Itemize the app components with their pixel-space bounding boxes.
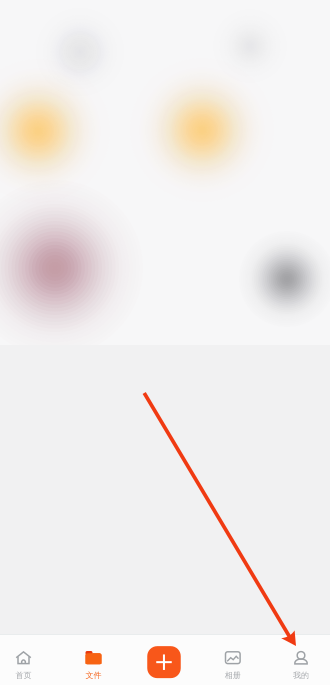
- staticText: 相册: [225, 670, 241, 680]
- button[interactable]: 我的: [268, 636, 330, 685]
- button[interactable]: 新建: [131, 637, 197, 685]
- staticText: 文件: [85, 670, 101, 680]
- button[interactable]: 相册: [200, 636, 266, 685]
- button[interactable]: 首页: [0, 636, 56, 685]
- button[interactable]: 文件: [60, 636, 126, 685]
- staticText: 我的: [293, 670, 309, 680]
- staticText: 首页: [15, 670, 31, 680]
